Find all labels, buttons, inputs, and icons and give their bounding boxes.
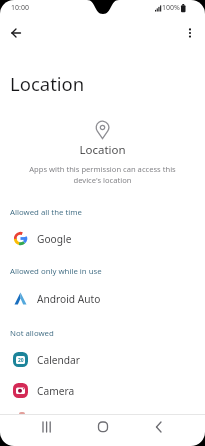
staticText: Allowed only while in use — [10, 266, 102, 277]
button[interactable] — [148, 418, 170, 440]
button[interactable] — [182, 26, 198, 42]
staticText: Location — [79, 142, 126, 158]
staticText: Allowed all the time — [10, 207, 82, 218]
staticText: Not allowed — [10, 328, 54, 339]
staticText: device's location — [73, 175, 132, 185]
button[interactable] — [36, 418, 58, 440]
staticText: Android Auto — [37, 292, 101, 306]
staticText: 100% — [162, 3, 180, 13]
button[interactable]: Camera — [0, 376, 205, 405]
staticText: Calendar — [37, 353, 81, 367]
button[interactable] — [92, 418, 114, 440]
staticText: 20 — [18, 357, 24, 364]
button[interactable]: Android Auto — [0, 284, 205, 313]
staticText: Location — [10, 71, 85, 96]
staticText: Camera — [37, 384, 75, 398]
staticText: Google — [37, 232, 72, 246]
button[interactable]: Google — [0, 224, 205, 253]
button[interactable] — [7, 26, 25, 40]
staticText: 10:00 — [11, 3, 29, 13]
staticText: Apps with this permission can access thi… — [29, 164, 176, 174]
button[interactable]: 20 — [0, 345, 205, 374]
